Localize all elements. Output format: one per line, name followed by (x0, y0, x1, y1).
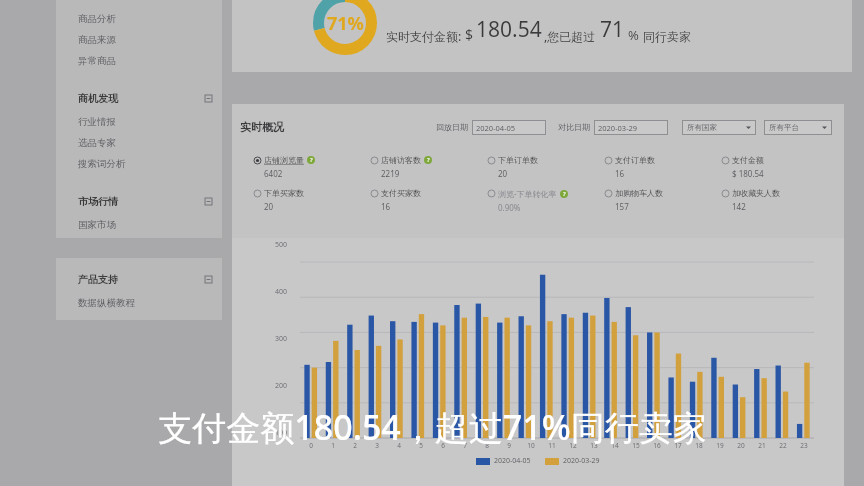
button[interactable]: 下单买家数 (254, 187, 371, 213)
staticText: ? (563, 190, 566, 198)
button[interactable]: 搜索词分析 (56, 153, 222, 174)
other: 帮助 (424, 156, 432, 164)
staticText: 6 (441, 441, 445, 450)
staticText: 5 (419, 441, 423, 450)
staticText: 浏览-下单转化率 (498, 188, 557, 199)
button[interactable]: 所有平台 (764, 120, 832, 135)
button[interactable]: 2020-03-29 (594, 120, 668, 135)
staticText: 商品来源 (78, 34, 116, 46)
button[interactable]: 产品支持 (56, 266, 222, 292)
staticText: 0 (309, 441, 313, 450)
staticText: 2020-04-05 (494, 456, 531, 466)
staticText: 行业情报 (78, 116, 116, 128)
staticText: 22 (779, 441, 787, 450)
button[interactable]: 下单订单数 (488, 154, 605, 180)
staticText: ? (427, 156, 430, 164)
button[interactable]: 市场行情 (56, 188, 222, 214)
button[interactable]: 所有国家 (682, 120, 756, 135)
staticText: 3 (375, 441, 379, 450)
staticText: 所有平台 (769, 123, 799, 132)
button[interactable]: 加购物车人数 (605, 187, 722, 213)
staticText: 200 (275, 381, 288, 391)
staticText: 所有国家 (687, 123, 717, 132)
staticText: 支付金额180.54，超过71%同行卖家 (158, 404, 707, 450)
staticText: 异常商品 (78, 55, 116, 67)
staticText: 2219 (381, 168, 400, 179)
staticText: 商机发现 (78, 92, 118, 105)
staticText: 23 (800, 441, 808, 450)
button[interactable]: 支付买家数 (371, 187, 488, 213)
staticText: 4 (397, 441, 401, 450)
staticText: 17 (674, 441, 682, 450)
staticText: 12 (569, 441, 577, 450)
button[interactable]: 店铺访客数 (371, 154, 488, 180)
staticText: 0.90% (498, 202, 521, 213)
staticText: 16 (615, 168, 625, 179)
staticText: 20 (498, 168, 508, 179)
staticText: 同行卖家 (643, 29, 691, 44)
button[interactable]: 行业情报 (56, 111, 222, 132)
staticText: 13 (590, 441, 598, 450)
button[interactable]: 国家市场 (56, 214, 222, 235)
button[interactable]: 选品专家 (56, 132, 222, 153)
button[interactable]: 店铺浏览量 (254, 154, 371, 180)
staticText: 选品专家 (78, 137, 116, 149)
staticText: 回放日期 (436, 122, 468, 132)
staticText: % (628, 26, 639, 44)
staticText: 1 (331, 441, 335, 450)
staticText: 7 (463, 441, 467, 450)
staticText: 市场行情 (78, 195, 118, 208)
staticText: 14 (611, 441, 619, 450)
staticText: ,您已超过 (544, 28, 596, 44)
button[interactable]: 商品来源 (56, 29, 222, 50)
button[interactable]: 数据纵横教程 (56, 292, 222, 313)
staticText: 180.54 (476, 15, 542, 44)
staticText: 下单买家数 (264, 188, 304, 198)
staticText: 商品分析 (78, 13, 116, 25)
staticText: 搜索词分析 (78, 158, 126, 170)
staticText: 加收藏夹人数 (732, 188, 780, 198)
staticText: 142 (732, 201, 746, 212)
staticText: 支付金额 (732, 155, 764, 165)
staticText: 16 (653, 441, 661, 450)
staticText: 2020-03-29 (598, 123, 638, 133)
other: 帮助 (560, 190, 568, 198)
button[interactable]: 商品分析 (56, 8, 222, 29)
staticText: 157 (615, 201, 629, 212)
staticText: 数据纵横教程 (78, 297, 135, 309)
staticText: 71% (327, 11, 364, 36)
staticText: 9 (507, 441, 511, 450)
staticText: 300 (275, 334, 288, 344)
staticText: 加购物车人数 (615, 188, 663, 198)
staticText: 店铺访客数 (381, 155, 421, 165)
staticText: 18 (695, 441, 703, 450)
staticText: ? (310, 156, 313, 164)
staticText: 产品支持 (78, 273, 118, 286)
button[interactable]: 异常商品 (56, 50, 222, 71)
button[interactable]: 支付金额 (722, 154, 839, 180)
button[interactable]: 浏览-下单转化率 (488, 187, 605, 214)
staticText: 100 (275, 428, 288, 438)
staticText: 8 (485, 441, 489, 450)
staticText: 19 (716, 441, 724, 450)
button[interactable]: 加收藏夹人数 (722, 187, 839, 213)
staticText: 支付订单数 (615, 155, 655, 165)
staticText: 10 (527, 441, 535, 450)
staticText: 15 (632, 441, 640, 450)
staticText: 实时支付金额: (386, 28, 462, 44)
staticText: 实时概况 (240, 120, 284, 134)
staticText: 下单订单数 (498, 155, 538, 165)
staticText: 21 (758, 441, 766, 450)
staticText: 2 (353, 441, 357, 450)
staticText: 500 (275, 240, 288, 250)
staticText: 11 (548, 441, 556, 450)
other: 帮助 (307, 156, 315, 164)
staticText: 店铺浏览量 (264, 155, 304, 165)
staticText: 71 (600, 15, 625, 44)
button[interactable]: 2020-04-05 (472, 120, 546, 135)
button[interactable]: 商机发现 (56, 85, 222, 111)
staticText: 20 (264, 201, 274, 212)
staticText: 国家市场 (78, 219, 116, 231)
staticText: 支付买家数 (381, 188, 421, 198)
button[interactable]: 支付订单数 (605, 154, 722, 180)
